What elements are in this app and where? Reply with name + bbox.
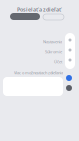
staticText: Účet <box>54 59 62 64</box>
staticText: Posielať a zdieľať <box>17 6 61 13</box>
staticText: Súkromie <box>45 49 62 54</box>
staticText: Viac o možnostiach zdieľania <box>14 70 63 75</box>
staticText: Nastavenia <box>43 39 62 44</box>
